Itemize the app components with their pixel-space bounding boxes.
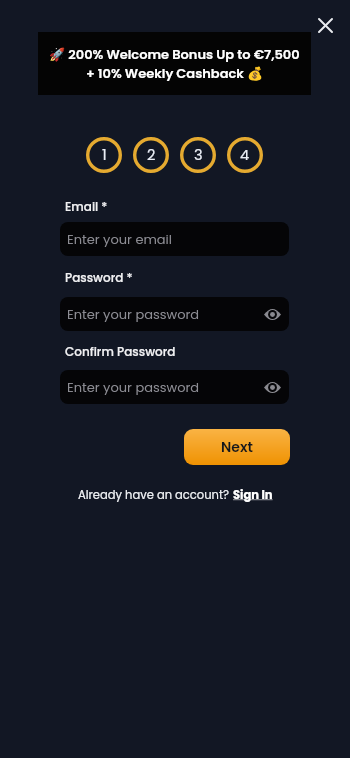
staticText: Already have an account? [78,487,233,503]
button[interactable] [313,13,337,37]
staticText: Email * [65,198,108,215]
staticText: Enter your email [67,230,173,248]
staticText: 1 [102,145,107,165]
staticText: 🚀 200% Welcome Bonus Up to €7,500 [49,45,300,63]
staticText: 4 [240,145,250,165]
button[interactable]: Next [184,429,290,465]
staticText: + 10% Weekly Cashback 💰 [86,64,264,82]
staticText: Enter your password [67,305,200,323]
button[interactable]: Enter your password [60,297,289,331]
staticText: 3 [194,145,203,165]
staticText: Next [221,437,253,457]
staticText: Enter your password [67,378,200,396]
staticText: Confirm Password [65,343,176,360]
button[interactable]: Enter your password [60,370,289,404]
staticText: 2 [147,145,156,165]
button[interactable]: Enter your email [60,222,289,256]
staticText: Password * [65,269,133,286]
button[interactable]: Sign In [233,487,273,503]
